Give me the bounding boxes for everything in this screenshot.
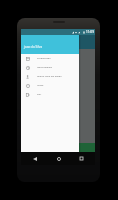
button[interactable]: Home (53, 153, 64, 164)
staticText: joao da Silva (24, 45, 43, 49)
button[interactable]: Ajuda (21, 81, 79, 90)
staticText: Sair (37, 93, 42, 96)
button[interactable]: Sair (21, 90, 79, 99)
button[interactable]: Back (29, 153, 40, 164)
staticText: Meus pedidos (37, 66, 53, 69)
staticText: Indicar para um amigo (37, 75, 62, 78)
staticText: 11:09 (86, 30, 94, 34)
staticText: Ajuda (37, 84, 44, 87)
button[interactable]: Programado (21, 54, 79, 63)
button[interactable]: Meus pedidos (21, 63, 79, 72)
staticText: Programado (37, 57, 51, 60)
button[interactable]: Recents (76, 153, 87, 164)
button[interactable]: Indicar para um amigo (21, 72, 79, 81)
